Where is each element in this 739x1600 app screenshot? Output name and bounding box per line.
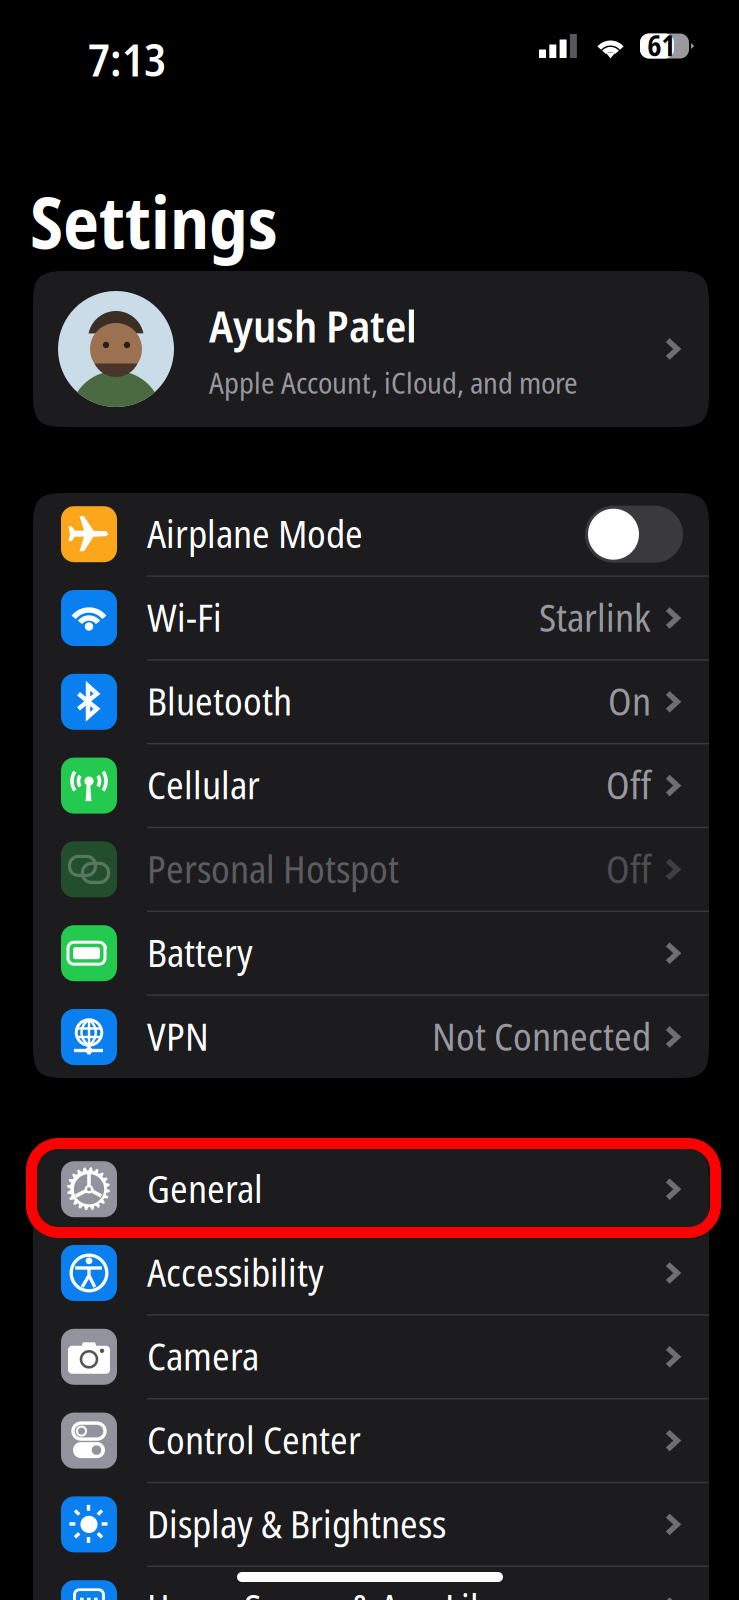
staticText: Camera	[147, 1330, 259, 1382]
staticText: 61	[647, 26, 675, 64]
staticText: Off	[606, 759, 651, 810]
staticText: Apple Account, iCloud, and more	[209, 362, 578, 402]
staticText: Off	[606, 842, 651, 894]
button[interactable]: Airplane Mode	[33, 493, 709, 575]
staticText: Ayush Patel	[209, 296, 417, 355]
button[interactable]: General	[33, 1148, 709, 1230]
staticText: VPN	[147, 1010, 209, 1062]
staticText: Accessibility	[147, 1246, 324, 1298]
button[interactable]: Battery	[33, 912, 709, 994]
staticText: Control Center	[147, 1414, 361, 1465]
button[interactable]: Wi-Fi	[33, 577, 709, 659]
staticText: Personal Hotspot	[147, 842, 399, 894]
staticText: Display & Brightness	[147, 1497, 446, 1549]
button[interactable]: Home Screen & App Library	[33, 1567, 709, 1600]
button[interactable]: Bluetooth	[33, 661, 709, 743]
staticText: Home Screen & App Library	[147, 1581, 547, 1600]
staticText: Airplane Mode	[147, 507, 363, 559]
button[interactable]: Camera	[33, 1316, 709, 1398]
button[interactable]: Ayush Patel	[33, 271, 709, 427]
button[interactable]: Control Center	[33, 1399, 709, 1482]
button[interactable]: Display & Brightness	[33, 1483, 709, 1566]
staticText: On	[608, 675, 651, 727]
staticText: General	[147, 1162, 263, 1214]
button[interactable]: Accessibility	[33, 1232, 709, 1314]
staticText: Settings	[30, 172, 278, 270]
staticText: Bluetooth	[147, 675, 292, 727]
staticText: Battery	[147, 926, 253, 978]
staticText: 7:13	[88, 28, 166, 90]
staticText: Wi-Fi	[147, 591, 222, 643]
button[interactable]: VPN	[33, 996, 709, 1078]
button[interactable]: Personal Hotspot	[33, 828, 709, 911]
staticText: Cellular	[147, 759, 260, 810]
staticText: Not Connected	[432, 1010, 651, 1062]
staticText: Starlink	[539, 591, 651, 643]
button[interactable]: Cellular	[33, 744, 709, 827]
